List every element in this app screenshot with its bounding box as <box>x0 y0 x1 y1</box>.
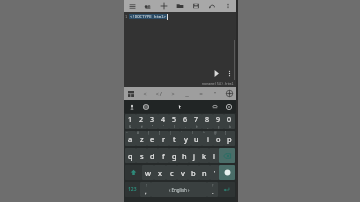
staticText: s <box>140 151 144 161</box>
button[interactable]: h <box>179 148 189 163</box>
staticText: u <box>194 134 199 144</box>
button[interactable]: k <box>199 148 209 163</box>
button[interactable]: 4 <box>158 114 169 129</box>
button[interactable]: Clipboard <box>174 101 185 112</box>
staticText: & <box>129 125 132 129</box>
staticText: ? <box>212 184 214 188</box>
button[interactable]: Backspace <box>219 148 235 163</box>
button[interactable]: 5 <box>169 114 180 129</box>
button[interactable]: = <box>194 87 208 100</box>
button[interactable]: ] <box>224 131 235 146</box>
staticText: 8 <box>205 115 210 125</box>
button[interactable]: g <box>169 148 179 163</box>
button[interactable]: </ <box>152 87 166 100</box>
staticText: à <box>229 125 231 129</box>
staticText: 4 <box>161 115 166 125</box>
staticText: k <box>202 151 207 161</box>
button[interactable]: 7 <box>191 114 202 129</box>
button[interactable]: 3 <box>147 114 158 129</box>
button[interactable]: 8 <box>202 114 213 129</box>
button[interactable]: ! <box>140 182 151 197</box>
staticText: _ <box>185 90 189 98</box>
button[interactable]: Menu <box>124 0 140 12</box>
button[interactable]: ^ <box>202 131 213 146</box>
button[interactable]: Voice input <box>126 101 137 112</box>
staticText: # <box>137 131 139 135</box>
button[interactable]: " <box>208 87 222 100</box>
button[interactable]: 2 <box>136 114 147 129</box>
button[interactable]: v <box>177 165 188 180</box>
button[interactable]: x <box>154 165 166 180</box>
staticText: ' <box>163 125 164 129</box>
button[interactable]: Keyboard settings <box>223 101 234 112</box>
button[interactable]: 1 <box>124 12 236 87</box>
staticText: ' <box>214 169 216 177</box>
button[interactable]: Add <box>156 0 172 12</box>
staticText: [ <box>159 131 160 135</box>
button[interactable]: Editor options <box>224 68 234 78</box>
button[interactable]: c <box>166 165 177 180</box>
button[interactable]: < <box>138 87 152 100</box>
button[interactable]: b <box>188 165 199 180</box>
button[interactable]: Emoji <box>219 165 235 180</box>
button[interactable]: Keyboard layout <box>124 87 138 100</box>
button[interactable]: 1 <box>125 114 136 129</box>
staticText: j <box>193 151 195 161</box>
staticText: p <box>227 134 232 144</box>
button[interactable]: Space, English <box>151 182 207 197</box>
staticText: o <box>216 134 221 144</box>
button[interactable]: @ <box>213 131 224 146</box>
staticText: > <box>171 90 175 98</box>
staticText: _ <box>207 125 209 129</box>
button[interactable]: Save <box>188 0 204 12</box>
button[interactable]: ~ <box>125 131 136 146</box>
button[interactable]: q <box>125 148 136 163</box>
button[interactable]: Open folder <box>172 0 188 12</box>
button[interactable]: [ <box>158 131 169 146</box>
button[interactable]: Enter <box>218 182 235 197</box>
staticText: q <box>128 151 133 161</box>
staticText: " <box>152 125 154 129</box>
staticText: ] <box>225 131 226 135</box>
staticText: | <box>170 131 172 135</box>
button[interactable]: More options <box>220 0 236 12</box>
button[interactable]: f <box>158 148 169 163</box>
button[interactable]: s <box>136 148 147 163</box>
staticText: < <box>143 90 147 98</box>
staticText: y <box>184 134 188 144</box>
staticText: è <box>196 125 198 129</box>
button[interactable]: > <box>166 87 180 100</box>
button[interactable]: j <box>189 148 199 163</box>
button[interactable]: ` <box>180 131 191 146</box>
button[interactable]: n <box>199 165 210 180</box>
button[interactable]: w <box>142 165 154 180</box>
staticText: ‹ English › <box>169 187 190 193</box>
button[interactable]: | <box>169 131 180 146</box>
button[interactable]: ' <box>210 165 219 180</box>
button[interactable]: Shift <box>125 165 142 180</box>
staticText: { <box>148 131 150 135</box>
staticText: w <box>145 168 151 178</box>
staticText: v <box>181 168 185 178</box>
button[interactable]: More symbols <box>222 87 236 100</box>
button[interactable]: d <box>147 148 158 163</box>
staticText: noname(54).html <box>202 81 234 86</box>
staticText: @ <box>214 131 217 135</box>
button[interactable]: l <box>209 148 219 163</box>
button[interactable]: 0 <box>224 114 235 129</box>
staticText: 3 <box>150 115 155 125</box>
button[interactable]: Undo <box>204 0 220 12</box>
button[interactable]: 6 <box>180 114 191 129</box>
button[interactable]: _ <box>180 87 194 100</box>
button[interactable]: 9 <box>213 114 224 129</box>
button[interactable]: Stickers <box>209 101 220 112</box>
button[interactable]: # <box>136 131 147 146</box>
button[interactable]: 123 <box>125 182 140 197</box>
button[interactable]: Run <box>210 67 222 79</box>
staticText: 123 <box>128 186 137 193</box>
button[interactable]: Language <box>140 101 151 112</box>
button[interactable]: \ <box>191 131 202 146</box>
button[interactable]: { <box>147 131 158 146</box>
button[interactable]: Font <box>140 0 156 12</box>
button[interactable]: ? <box>207 182 218 197</box>
